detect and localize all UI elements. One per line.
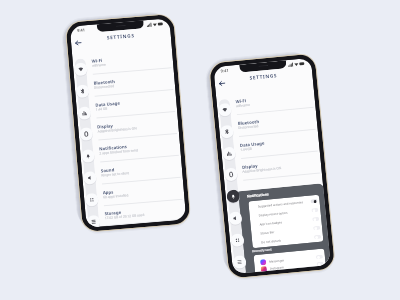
staticText: 9:41 — [220, 68, 229, 73]
staticText: Apps — [102, 188, 114, 195]
button[interactable]: Sound — [100, 156, 181, 184]
button[interactable]: Bluetooth — [220, 125, 234, 139]
staticText: 2 apps blocked from send — [99, 148, 138, 155]
button[interactable]: Toggle — [313, 226, 320, 230]
button[interactable]: Bluetooth — [237, 108, 316, 137]
staticText: Do not disturb — [261, 235, 314, 244]
button[interactable]: Toggle — [316, 254, 323, 259]
button[interactable]: Toggle — [316, 261, 324, 266]
staticText: Messenger — [269, 255, 316, 264]
staticText: Bluetooth — [93, 78, 116, 86]
button[interactable]: Toggle — [314, 235, 321, 239]
button[interactable]: Apps — [85, 193, 99, 207]
staticText: 1.44 GB — [240, 147, 252, 152]
button[interactable]: Sound — [83, 171, 97, 185]
staticText: 1.44 GB — [96, 107, 108, 112]
staticText: Ringer set to silent — [101, 171, 129, 177]
button[interactable]: Bluetooth — [93, 68, 173, 97]
button[interactable]: Display — [96, 112, 177, 140]
button[interactable]: Notifications — [81, 149, 95, 163]
button[interactable]: Notifications — [98, 134, 179, 162]
button[interactable]: Apps — [230, 233, 245, 247]
staticText: Disconnected — [94, 84, 115, 90]
staticText: Storage — [104, 209, 122, 216]
button[interactable]: Display — [241, 151, 320, 181]
staticText: Wi-Fi — [91, 57, 103, 64]
button[interactable]: Wi-Fi — [235, 86, 314, 115]
button[interactable]: Display — [224, 167, 238, 182]
button[interactable]: Back — [215, 77, 227, 89]
button[interactable]: Sound — [228, 211, 242, 225]
button[interactable]: Data Usage — [95, 90, 175, 119]
staticText: Data Usage — [240, 140, 265, 148]
button[interactable]: Storage — [104, 200, 184, 226]
button[interactable]: Storage — [232, 255, 247, 269]
staticText: Adaptive Brightness is ON — [97, 126, 137, 133]
button[interactable]: Back — [72, 36, 83, 48]
staticText: Wi-Fi — [235, 97, 247, 104]
button[interactable]: App icon badges — [259, 214, 320, 228]
staticText: Notifications — [246, 191, 269, 199]
staticText: Bluetooth — [237, 118, 260, 126]
button[interactable]: Do not disturb — [261, 232, 321, 246]
button[interactable]: Apps — [102, 178, 183, 206]
staticText: Notifications — [99, 143, 127, 151]
staticText: Instagram — [270, 262, 317, 271]
button[interactable]: Display recent option — [258, 205, 319, 219]
button[interactable]: Bluetooth — [76, 84, 90, 98]
staticText: 9:41 — [77, 27, 85, 33]
button[interactable]: Toggle — [312, 217, 319, 221]
button[interactable]: Data Usage — [77, 106, 91, 120]
staticText: Disconnected — [238, 124, 259, 130]
staticText: Display — [97, 122, 113, 130]
button[interactable]: Notifications — [226, 189, 240, 203]
button[interactable]: Storage — [87, 215, 101, 228]
button[interactable]: Toggle — [310, 199, 318, 203]
staticText: Display recent option — [258, 208, 312, 217]
button[interactable]: Data Usage — [239, 130, 318, 159]
button[interactable]: Display — [79, 127, 93, 141]
button[interactable]: Wi-Fi — [218, 103, 232, 117]
button[interactable]: Messenger — [260, 253, 323, 267]
button[interactable]: Status Bar — [260, 223, 320, 237]
staticText: wifiname — [92, 63, 106, 68]
staticText: SETTINGS — [106, 32, 135, 41]
staticText: Sound — [101, 166, 115, 173]
staticText: Display — [242, 162, 258, 170]
button[interactable]: Data Usage — [222, 146, 236, 161]
staticText: 60 apps installed — [103, 193, 129, 199]
staticText: Suggested actions and responses — [258, 199, 311, 209]
staticText: SETTINGS — [249, 72, 278, 82]
button[interactable]: Wi-Fi — [74, 62, 88, 76]
staticText: Adaptive Brightness is ON — [242, 166, 281, 174]
button[interactable]: Instagram — [261, 260, 324, 271]
button[interactable]: Toggle — [311, 208, 319, 212]
staticText: wifiname — [236, 103, 250, 108]
button[interactable]: Suggested actions and responses — [257, 196, 318, 210]
staticText: Recently sent — [252, 247, 272, 253]
staticText: App icon badges — [259, 217, 312, 226]
staticText: 17.02 GB of 29.12 GB used — [105, 213, 145, 220]
staticText: Status Bar — [260, 226, 313, 235]
button[interactable]: Wi-Fi — [91, 46, 172, 75]
staticText: Data Usage — [95, 100, 120, 108]
